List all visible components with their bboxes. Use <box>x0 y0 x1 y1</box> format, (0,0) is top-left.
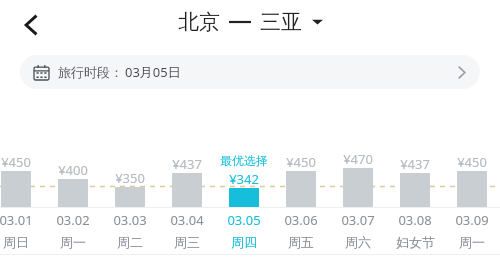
staticText: 三亚 <box>260 9 302 35</box>
staticText: ¥450 <box>457 153 487 171</box>
staticText: 北京 <box>178 9 220 35</box>
staticText: ¥350 <box>115 169 145 187</box>
button[interactable]: Back <box>14 8 48 42</box>
staticText: 03.02 <box>56 211 90 229</box>
staticText: ¥342 <box>229 170 259 188</box>
staticText: 03.06 <box>284 211 318 229</box>
staticText: ¥437 <box>172 155 202 173</box>
staticText: ¥470 <box>343 150 373 168</box>
button[interactable]: 旅行时段： <box>20 55 480 89</box>
staticText: 周六 <box>345 234 371 250</box>
staticText: 周三 <box>174 234 200 250</box>
staticText: 03.04 <box>170 211 204 229</box>
staticText: 妇女节 <box>396 234 435 250</box>
staticText: 周一 <box>459 234 485 250</box>
staticText: 03.03 <box>113 211 147 229</box>
staticText: 周四 <box>231 234 257 250</box>
staticText: 旅行时段： <box>58 64 123 80</box>
staticText: 最优选择 <box>220 153 268 168</box>
staticText: 周一 <box>60 234 86 250</box>
staticText: 03.08 <box>398 211 432 229</box>
staticText: 周二 <box>117 234 143 250</box>
staticText: ¥450 <box>1 153 31 171</box>
staticText: 03.05 <box>227 211 261 229</box>
staticText: 03.09 <box>455 211 489 229</box>
staticText: ¥437 <box>400 155 430 173</box>
button[interactable]: 北京 <box>178 9 323 35</box>
staticText: 03.07 <box>341 211 375 229</box>
staticText: 周五 <box>288 234 314 250</box>
staticText: ¥450 <box>286 153 316 171</box>
staticText: 03.01 <box>0 211 33 229</box>
staticText: ¥400 <box>58 161 88 179</box>
staticText: 03月05日 <box>125 63 181 81</box>
staticText: 周日 <box>3 234 29 250</box>
